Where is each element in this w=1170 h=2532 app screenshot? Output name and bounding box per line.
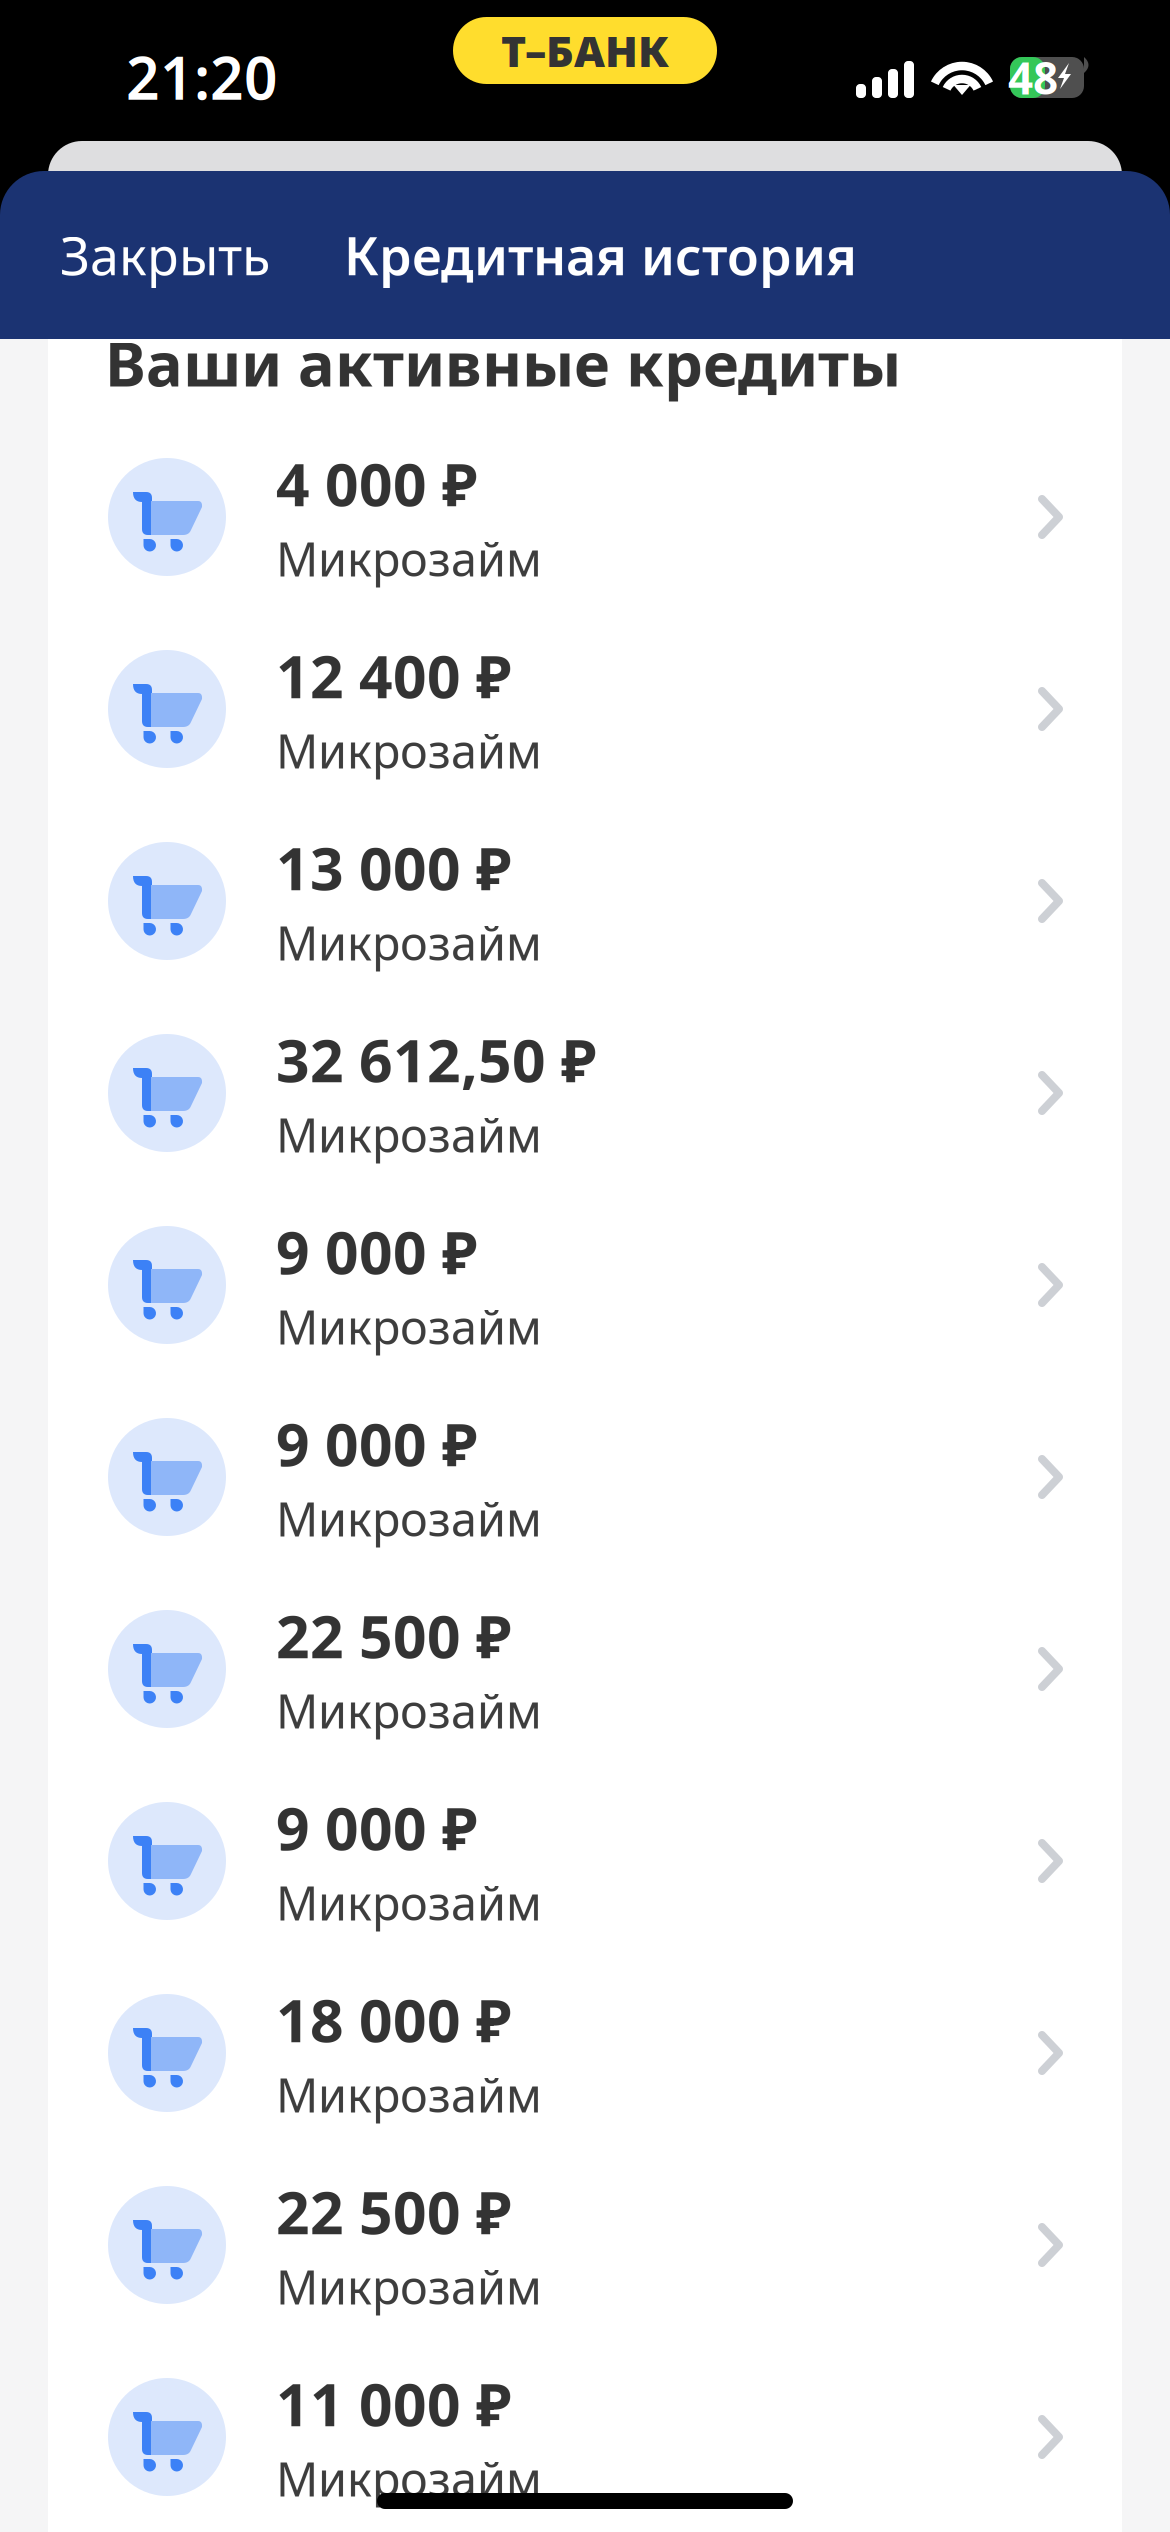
button[interactable]: 18 000 ₽ xyxy=(48,1957,1122,2149)
staticText: Микрозайм xyxy=(276,1679,542,1741)
staticText: Микрозайм xyxy=(276,1295,542,1357)
button[interactable]: 11 000 ₽ xyxy=(48,2341,1122,2532)
staticText: Микрозайм xyxy=(276,527,542,589)
staticText: 18 000 ₽ xyxy=(276,1981,511,2058)
button[interactable]: 32 612,50 ₽ xyxy=(48,997,1122,1189)
button[interactable]: 22 500 ₽ xyxy=(48,1573,1122,1765)
staticText: Закрыть xyxy=(60,220,270,290)
staticText: 13 000 ₽ xyxy=(276,829,511,906)
button[interactable]: 9 000 ₽ xyxy=(48,1189,1122,1381)
staticText: 32 612,50 ₽ xyxy=(276,1021,596,1098)
staticText: Микрозайм xyxy=(276,2063,542,2125)
staticText: 4 000 ₽ xyxy=(276,445,477,522)
staticText: Микрозайм xyxy=(276,2255,542,2317)
staticText: 12 400 ₽ xyxy=(276,637,511,714)
staticText: 11 000 ₽ xyxy=(276,2365,511,2442)
button[interactable]: 13 000 ₽ xyxy=(48,805,1122,997)
staticText: T–БАНК xyxy=(501,22,669,79)
button[interactable]: 4 000 ₽ xyxy=(48,421,1122,613)
staticText: 9 000 ₽ xyxy=(276,1213,477,1290)
staticText: 21:20 xyxy=(126,38,278,116)
staticText: Микрозайм xyxy=(276,719,542,781)
staticText: Микрозайм xyxy=(276,1103,542,1165)
button[interactable]: 22 500 ₽ xyxy=(48,2149,1122,2341)
button[interactable]: 9 000 ₽ xyxy=(48,1381,1122,1573)
button[interactable]: Закрыть xyxy=(0,194,304,316)
staticText: 9 000 ₽ xyxy=(276,1405,477,1482)
button[interactable]: 12 400 ₽ xyxy=(48,613,1122,805)
staticText: Микрозайм xyxy=(276,2447,542,2509)
staticText: Микрозайм xyxy=(276,1871,542,1933)
staticText: 22 500 ₽ xyxy=(276,2173,511,2250)
staticText: 22 500 ₽ xyxy=(276,1597,511,1674)
staticText: 9 000 ₽ xyxy=(276,1789,477,1866)
staticText: Ваши активные кредиты xyxy=(105,322,901,403)
staticText: Микрозайм xyxy=(276,911,542,973)
staticText: 48 xyxy=(1008,48,1058,107)
staticText: Кредитная история xyxy=(344,220,857,290)
button[interactable]: 9 000 ₽ xyxy=(48,1765,1122,1957)
staticText: Микрозайм xyxy=(276,1487,542,1549)
